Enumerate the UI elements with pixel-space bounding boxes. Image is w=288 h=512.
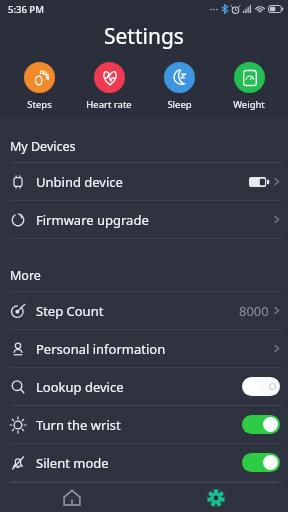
button[interactable]: Heart rate [74, 60, 144, 113]
button[interactable]: Personal information [0, 330, 288, 367]
staticText: Sleep [167, 98, 192, 111]
staticText: Firmware upgrade [36, 211, 149, 229]
button[interactable]: Home [0, 483, 144, 512]
staticText: Settings [104, 22, 184, 51]
staticText: Step Count [36, 302, 104, 320]
button[interactable]: Unbind device [0, 163, 288, 200]
button[interactable]: Step Count [0, 292, 288, 329]
button[interactable]: Settings [144, 483, 288, 512]
staticText: 5:36 PM [8, 3, 44, 16]
button[interactable]: Turn the wrist [0, 406, 288, 443]
staticText: Personal information [36, 340, 166, 358]
button[interactable]: Silent mode [0, 444, 288, 481]
button[interactable]: Weight [214, 60, 284, 113]
button[interactable]: Sleep [144, 60, 214, 113]
staticText: Unbind device [36, 173, 123, 191]
button[interactable]: Toggle on [242, 415, 280, 434]
button[interactable]: Steps [4, 60, 74, 113]
staticText: Steps [27, 98, 52, 111]
staticText: Lookup device [36, 378, 124, 396]
staticText: Heart rate [86, 98, 132, 111]
staticText: My Devices [10, 138, 76, 155]
staticText: Silent mode [36, 454, 109, 472]
button[interactable]: Toggle on [242, 453, 280, 472]
button[interactable]: Lookup device [0, 368, 288, 405]
staticText: Weight [233, 98, 265, 111]
staticText: 8000 [239, 302, 269, 320]
staticText: More [10, 267, 41, 284]
button[interactable]: Firmware upgrade [0, 201, 288, 238]
staticText: Turn the wrist [36, 416, 121, 434]
button[interactable]: Toggle off [242, 377, 280, 396]
